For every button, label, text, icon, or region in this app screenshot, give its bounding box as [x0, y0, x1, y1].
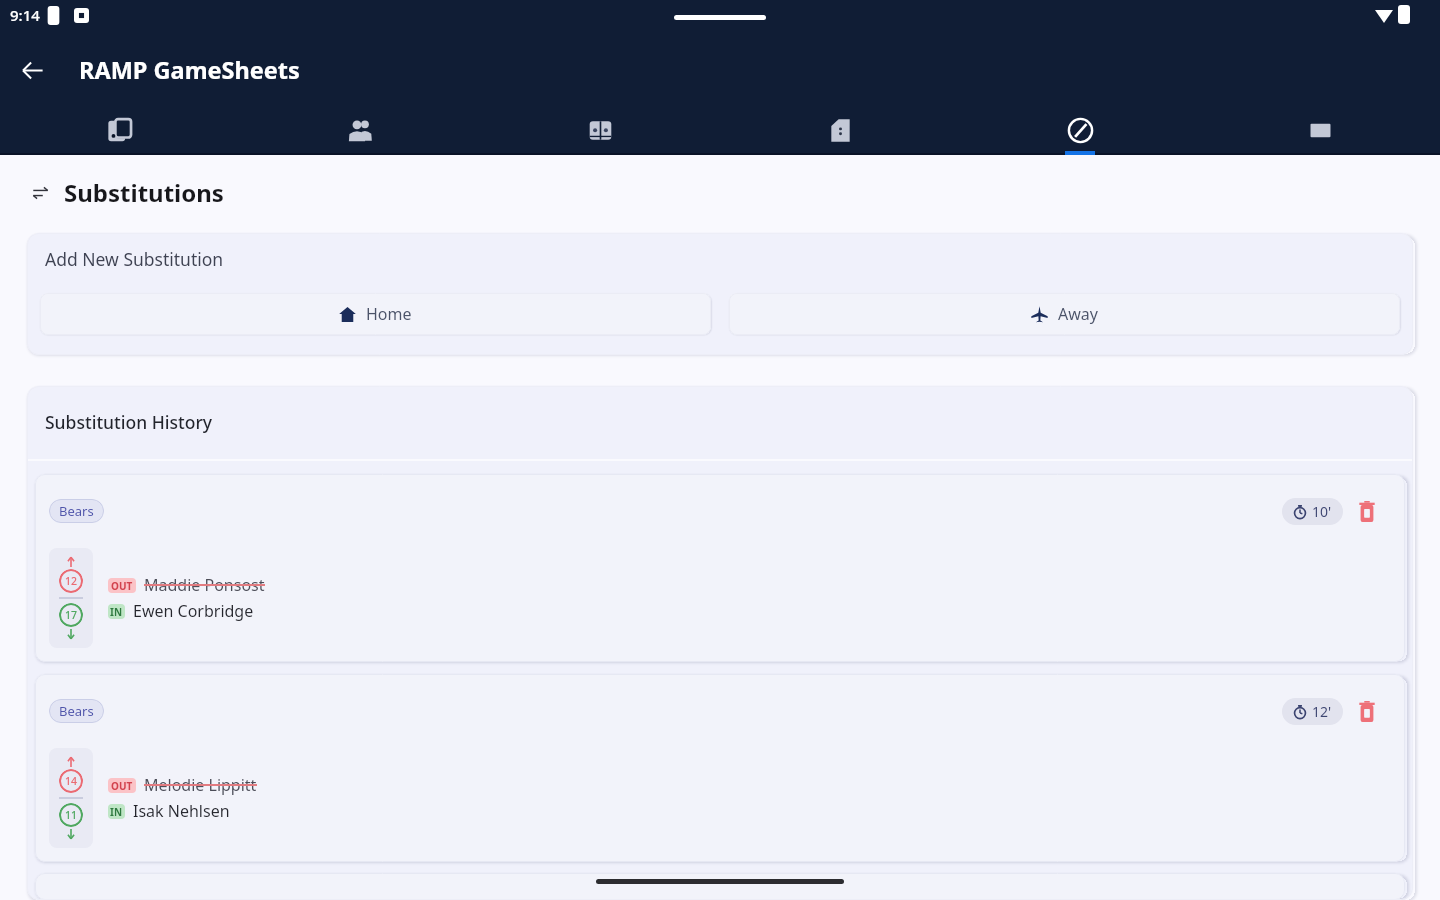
- staticText: OUT: [111, 579, 133, 593]
- staticText: Substitutions: [64, 176, 224, 209]
- button[interactable]: Delete substitution: [1352, 496, 1382, 526]
- staticText: 10': [1312, 502, 1332, 521]
- staticText: 9:14: [10, 5, 40, 25]
- staticText: 14: [65, 774, 78, 788]
- staticText: Maddie Ponsost: [144, 574, 265, 596]
- button[interactable]: Lineups: [240, 102, 480, 155]
- staticText: Substitution History: [45, 410, 213, 434]
- button[interactable]: Bears: [35, 674, 1405, 862]
- button[interactable]: Substitutions: [960, 102, 1200, 155]
- button[interactable]: More: [1200, 102, 1440, 155]
- button[interactable]: Game Sheet: [0, 102, 240, 155]
- button[interactable]: Bears: [35, 474, 1405, 662]
- button[interactable]: Back: [11, 49, 53, 91]
- staticText: Away: [1058, 303, 1098, 325]
- staticText: 11: [65, 808, 78, 822]
- staticText: Bears: [59, 702, 94, 720]
- staticText: Add New Substitution: [45, 247, 224, 271]
- staticText: 12: [65, 574, 78, 588]
- button[interactable]: Score: [480, 102, 720, 155]
- button[interactable]: Home: [40, 293, 711, 335]
- button[interactable]: Notes: [720, 102, 960, 155]
- staticText: 12': [1312, 702, 1332, 721]
- staticText: Bears: [59, 502, 94, 520]
- staticText: Melodie Lippitt: [144, 774, 257, 796]
- button[interactable]: Delete substitution: [1352, 696, 1382, 726]
- button[interactable]: Bears: [35, 873, 1405, 900]
- staticText: OUT: [111, 779, 133, 793]
- staticText: Isak Nehlsen: [133, 800, 230, 822]
- staticText: 17: [65, 608, 78, 622]
- staticText: IN: [110, 805, 123, 819]
- button[interactable]: Away: [729, 293, 1400, 335]
- staticText: RAMP GameSheets: [79, 54, 300, 86]
- staticText: IN: [110, 605, 123, 619]
- staticText: Ewen Corbridge: [133, 600, 254, 622]
- staticText: Home: [366, 303, 412, 325]
